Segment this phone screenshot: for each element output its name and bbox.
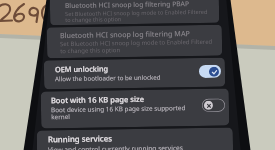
staticText: View and control currently running servi… xyxy=(48,143,183,150)
button[interactable]: OEM unlocking, on xyxy=(199,65,221,78)
staticText: Boot with 16 KB page size xyxy=(51,94,145,105)
staticText: Bluetooth HCI snoop log filtering MAP xyxy=(60,28,191,40)
staticText: Allow the bootloader to be unlocked xyxy=(55,73,161,82)
staticText: Set Bluetooth HCI snoop log mode to Enab… xyxy=(60,38,213,55)
staticText: OEM unlocking xyxy=(55,63,109,74)
button[interactable]: Boot with 16 KB page size xyxy=(41,88,229,128)
staticText: Set Bluetooth HCI snoop log mode to Enab… xyxy=(65,8,208,24)
button[interactable]: Boot with 16 KB page size, off xyxy=(202,99,225,112)
button[interactable]: OEM unlocking xyxy=(44,58,225,89)
button[interactable]: Bluetooth HCI snoop log filtering PBAP xyxy=(50,0,219,25)
button[interactable]: Running services xyxy=(37,127,233,150)
staticText: Running services xyxy=(48,133,113,145)
staticText: Bluetooth HCI snoop log filtering PBAP xyxy=(65,0,190,10)
staticText: Boot device using 16 KB page size suppor… xyxy=(51,103,186,121)
button[interactable]: Bluetooth HCI snoop log filtering MAP xyxy=(47,25,222,58)
